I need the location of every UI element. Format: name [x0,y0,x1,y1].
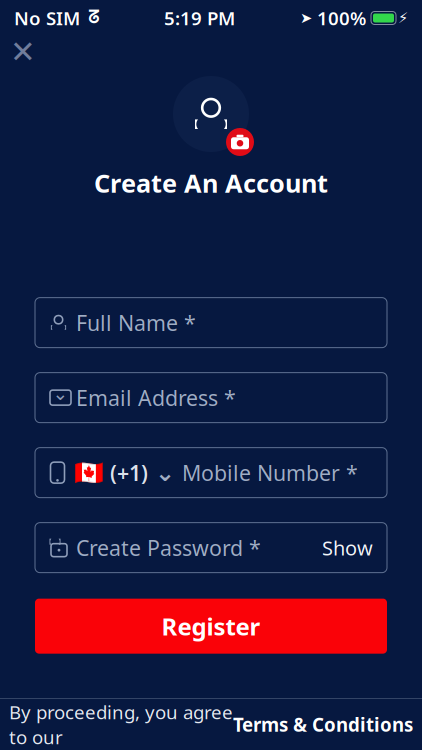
button[interactable]: By proceeding, you agree to our [0,699,422,750]
staticText: 100% [312,6,366,30]
staticText: ᘔ [80,9,99,26]
staticText: No SIM [14,6,80,30]
staticText: Create An Account [94,166,328,200]
staticText: Register [161,610,260,642]
staticText: 🇨🇦 [74,459,104,486]
staticText: ✕ [10,35,36,69]
staticText: (+1) [110,458,148,487]
staticText: Terms & Conditions [233,712,413,737]
button[interactable]: Show [322,524,373,572]
staticText: By proceeding, you agree to our [9,700,233,749]
button[interactable]: Close [0,32,46,72]
staticText: ⚡︎ [398,10,408,26]
staticText: ➤ [300,10,312,26]
staticText: Create Password * [76,533,261,562]
staticText: Mobile Number * [182,458,358,487]
staticText: ⌄ [155,459,175,486]
staticText: 5:19 PM [164,6,235,30]
button[interactable]: Add profile photo [166,72,256,156]
staticText: Full Name * [76,308,196,337]
button[interactable]: Register [35,599,387,654]
button[interactable]: 🇨🇦 [35,448,387,498]
staticText: ⌄ [52,383,68,404]
staticText: Show [322,534,373,561]
staticText: Email Address * [76,383,236,412]
